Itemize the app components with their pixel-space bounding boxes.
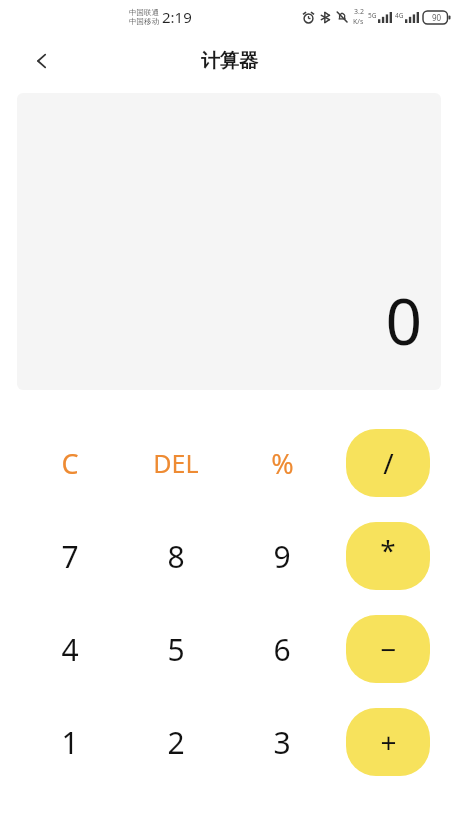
button[interactable]: 4 <box>28 615 112 683</box>
staticText: 5 <box>167 629 185 670</box>
button[interactable]: 9 <box>240 522 324 590</box>
staticText: / <box>383 444 394 482</box>
button[interactable]: 1 <box>28 708 112 776</box>
staticText: 1 <box>61 722 79 763</box>
staticText: 中国移动 <box>129 17 159 26</box>
button[interactable]: + <box>346 708 430 776</box>
staticText: + <box>380 723 397 761</box>
staticText: 3 <box>273 722 291 763</box>
button[interactable]: * <box>346 522 430 590</box>
staticText: C <box>61 445 79 482</box>
button[interactable]: C <box>28 429 112 497</box>
staticText: * <box>380 531 396 569</box>
staticText: K/s <box>353 17 364 27</box>
button[interactable]: 6 <box>240 615 324 683</box>
button[interactable]: − <box>346 615 430 683</box>
button[interactable]: 3 <box>240 708 324 776</box>
staticText: 4G <box>395 11 404 20</box>
staticText: 5G <box>368 11 377 20</box>
button[interactable]: Back <box>20 39 64 83</box>
staticText: 8 <box>167 536 185 577</box>
button[interactable]: 5 <box>134 615 218 683</box>
button[interactable]: DEL <box>134 429 218 497</box>
staticText: 2:19 <box>162 7 192 27</box>
staticText: 中国联通 <box>129 8 159 17</box>
button[interactable]: / <box>346 429 430 497</box>
staticText: % <box>271 445 294 482</box>
button[interactable]: 8 <box>134 522 218 590</box>
staticText: − <box>380 630 397 668</box>
staticText: 2 <box>167 722 185 763</box>
staticText: 0 <box>385 277 422 364</box>
staticText: 7 <box>61 536 79 577</box>
staticText: 3.2 <box>354 7 364 17</box>
staticText: 6 <box>273 629 291 670</box>
staticText: 计算器 <box>201 49 258 73</box>
button[interactable]: 7 <box>28 522 112 590</box>
staticText: 9 <box>273 536 291 577</box>
staticText: 90 <box>432 12 442 23</box>
button[interactable]: % <box>240 429 324 497</box>
button[interactable]: 2 <box>134 708 218 776</box>
staticText: DEL <box>153 446 199 480</box>
staticText: 4 <box>61 629 79 670</box>
